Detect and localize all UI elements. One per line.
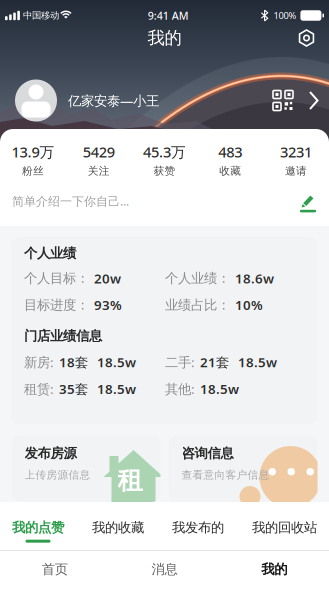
staticText: 获赞 [153,164,175,178]
staticText: 9:41 AM [148,8,189,23]
staticText: 查看意向客户信息 [181,468,269,481]
staticText: 发布房源 [24,445,76,461]
staticText: 10% [235,296,263,314]
staticText: 中国移动 [23,10,59,21]
staticText: 100% [273,9,296,22]
staticText: 我发布的 [172,519,224,536]
staticText: 18.5w [238,353,277,371]
button[interactable]: 我的点赞 [12,519,64,543]
button[interactable]: 首页 [0,561,110,577]
staticText: 93% [94,296,122,314]
staticText: 目标进度： [24,297,89,313]
staticText: 租赁: [24,380,54,398]
staticText: 我的 [147,27,181,49]
staticText: 3231 [280,142,312,161]
staticText: 消息 [151,561,177,577]
staticText: 18.6w [235,269,274,287]
staticText: 业绩占比： [165,297,230,313]
staticText: 我的收藏 [92,519,144,536]
staticText: 5429 [83,142,115,161]
button[interactable]: Settings [298,29,329,46]
staticText: 21套 [200,353,229,371]
button[interactable]: 5429 [66,142,132,178]
staticText: 35套 [59,380,88,398]
button[interactable]: Edit intro [300,192,329,210]
staticText: 咨询信息 [181,445,233,461]
staticText: 个人目标： [24,270,89,286]
button[interactable]: 我发布的 [172,519,224,543]
staticText: 个人业绩： [165,270,230,286]
staticText: 新房: [24,353,54,371]
button[interactable]: 483 [197,142,263,178]
staticText: 其他: [165,380,195,398]
staticText: 邀请 [285,164,307,178]
button[interactable]: 租 [11,435,160,502]
button[interactable]: 13.9万 [0,142,66,178]
staticText: 粉丝 [22,164,44,178]
staticText: 收藏 [219,164,241,178]
staticText: 亿家安泰—小王 [68,92,159,109]
staticText: 13.9万 [11,142,54,161]
button[interactable]: 3231 [263,142,329,178]
staticText: 18.5w [97,353,136,371]
staticText: 18.5w [200,380,239,398]
staticText: 483 [218,142,242,161]
staticText: 个人业绩 [24,245,76,261]
staticText: 门店业绩信息 [24,328,102,344]
staticText: 我的点赞 [12,519,64,536]
button[interactable]: 我的回收站 [252,519,317,543]
staticText: 45.3万 [143,142,186,161]
staticText: 上传房源信息 [24,468,90,481]
button[interactable]: 咨询信息 [168,435,317,502]
button[interactable]: 45.3万 [132,142,197,178]
staticText: 二手: [165,353,195,371]
staticText: 租 [117,465,142,496]
button[interactable]: 我的 [219,561,329,577]
button[interactable]: 亿家安泰—小王 [0,53,329,122]
button[interactable]: 我的收藏 [92,519,144,543]
staticText: 关注 [88,164,110,178]
staticText: 首页 [42,561,68,577]
staticText: 简单介绍一下你自己... [12,193,129,209]
staticText: 我的回收站 [252,519,317,536]
staticText: 18套 [59,353,88,371]
staticText: 20w [94,269,121,287]
staticText: 我的 [261,561,287,577]
button[interactable]: 消息 [110,561,219,577]
staticText: 18.5w [97,380,136,398]
